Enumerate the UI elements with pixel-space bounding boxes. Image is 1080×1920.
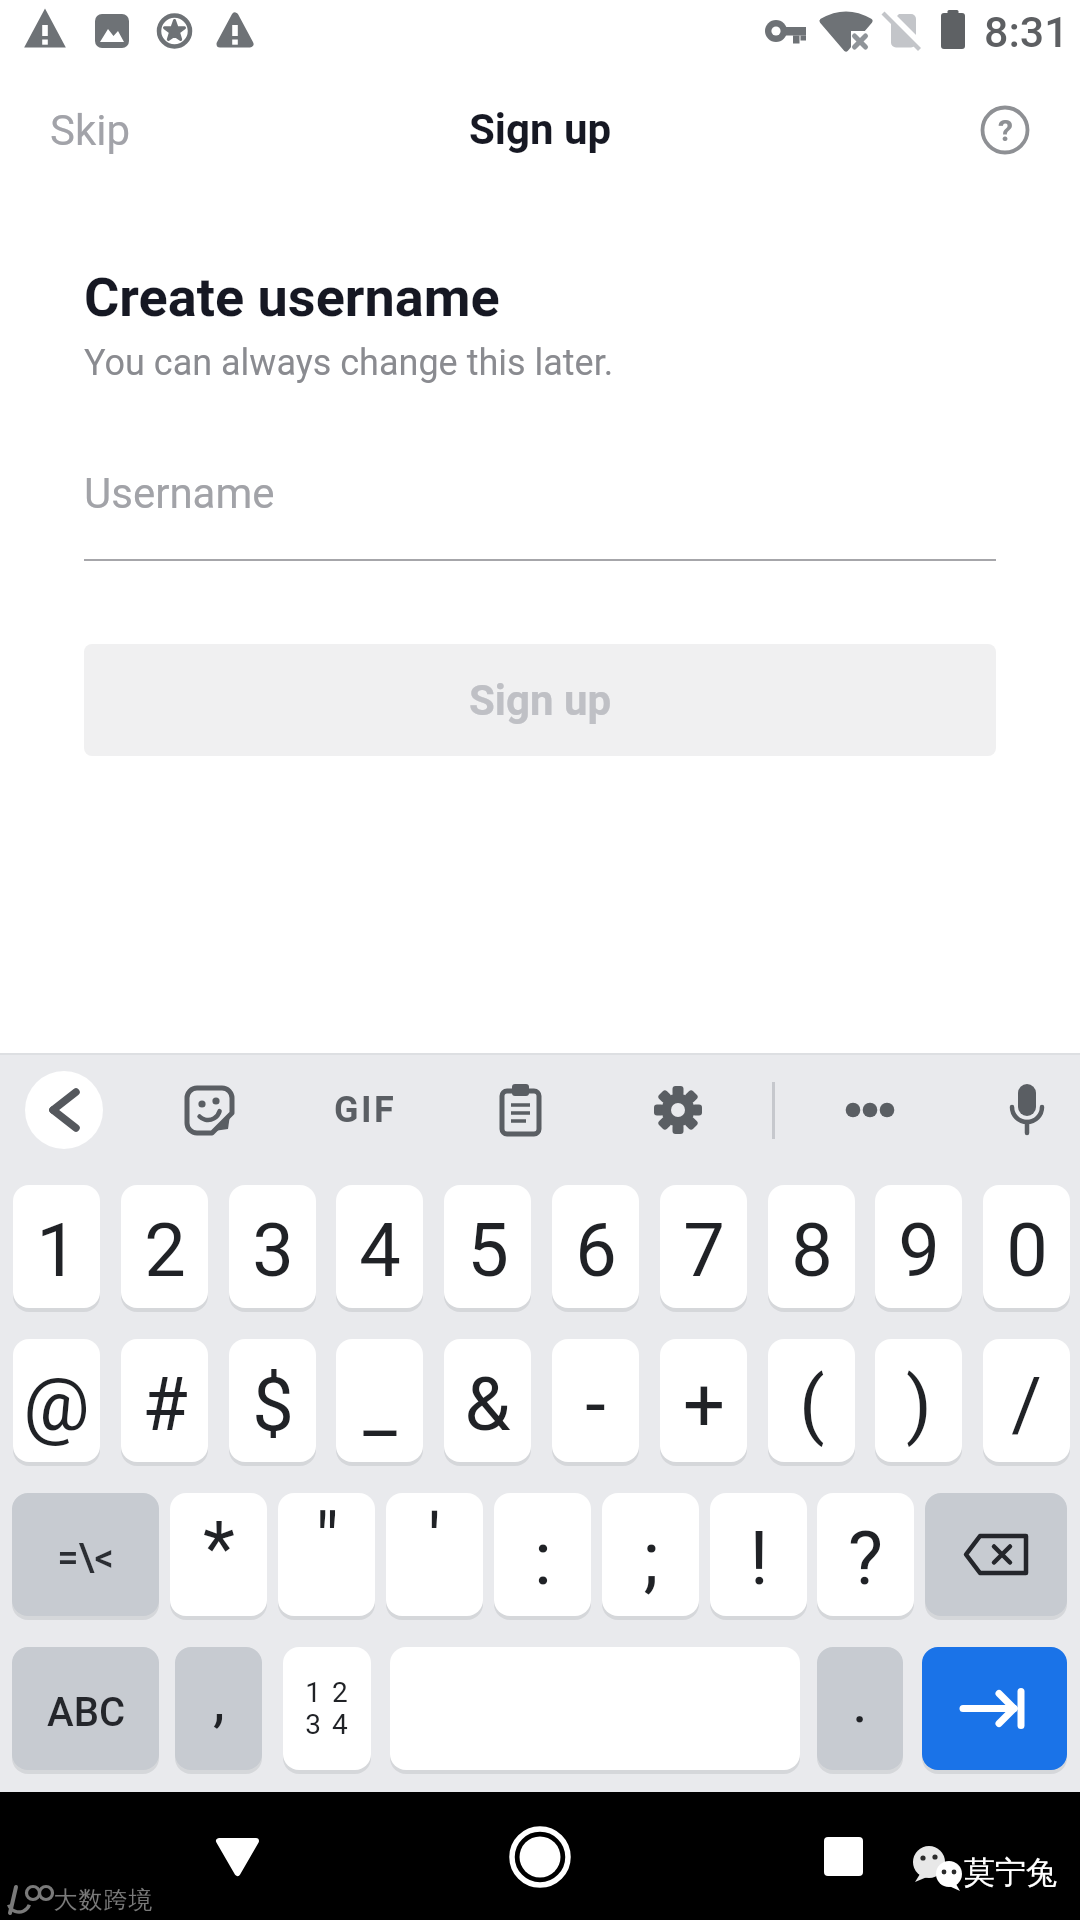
button[interactable]: (: [768, 1339, 855, 1462]
staticText: Sign up: [469, 676, 612, 725]
staticText: Username: [84, 469, 275, 518]
staticText: :: [534, 1515, 552, 1602]
staticText: ABC: [47, 1689, 125, 1736]
staticText: ?: [848, 1515, 883, 1602]
button[interactable]: ,: [175, 1647, 262, 1770]
staticText: _: [363, 1361, 397, 1448]
button[interactable]: [840, 1080, 900, 1140]
staticText: 2: [144, 1207, 186, 1294]
button[interactable]: $: [229, 1339, 316, 1462]
button[interactable]: 0: [983, 1185, 1070, 1308]
button[interactable]: ;: [602, 1493, 699, 1616]
staticText: Skip: [50, 106, 131, 155]
button[interactable]: ?: [817, 1493, 914, 1616]
staticText: 8: [791, 1207, 833, 1294]
button[interactable]: ABC: [12, 1647, 159, 1770]
button[interactable]: .: [817, 1647, 903, 1770]
staticText: GIF: [334, 1089, 397, 1131]
staticText: Create username: [84, 266, 500, 329]
button[interactable]: [180, 1810, 294, 1904]
button[interactable]: !: [710, 1493, 807, 1616]
staticText: 3: [252, 1207, 294, 1294]
staticText: =\<: [57, 1536, 114, 1581]
button[interactable]: #: [121, 1339, 208, 1462]
button[interactable]: Skip: [30, 95, 150, 165]
staticText: 7: [683, 1207, 725, 1294]
button[interactable]: -: [552, 1339, 639, 1462]
button[interactable]: 5: [444, 1185, 531, 1308]
button[interactable]: 3: [229, 1185, 316, 1308]
button[interactable]: [483, 1810, 597, 1904]
staticText: +: [683, 1361, 725, 1448]
staticText: $: [252, 1361, 294, 1448]
button[interactable]: Sign up: [84, 644, 996, 756]
button[interactable]: [492, 1080, 548, 1140]
staticText: 5: [467, 1207, 509, 1294]
button[interactable]: &: [444, 1339, 531, 1462]
staticText: 大数跨境: [53, 1885, 153, 1915]
staticText: #: [142, 1361, 188, 1448]
staticText: ": [315, 1497, 339, 1584]
button[interactable]: 1 2 3 4: [283, 1647, 371, 1770]
staticText: 6: [575, 1207, 617, 1294]
staticText: 4: [359, 1207, 401, 1294]
button[interactable]: [922, 1647, 1067, 1770]
button[interactable]: 2: [121, 1185, 208, 1308]
staticText: .: [852, 1666, 868, 1736]
button[interactable]: *: [170, 1493, 267, 1616]
button[interactable]: +: [660, 1339, 747, 1462]
staticText: ': [428, 1497, 441, 1584]
staticText: ): [906, 1361, 932, 1448]
button[interactable]: 7: [660, 1185, 747, 1308]
button[interactable]: [925, 1493, 1067, 1616]
button[interactable]: ': [386, 1493, 483, 1616]
button[interactable]: _: [336, 1339, 423, 1462]
button[interactable]: 9: [875, 1185, 962, 1308]
button[interactable]: 8: [768, 1185, 855, 1308]
button[interactable]: /: [983, 1339, 1070, 1462]
staticText: 0: [1006, 1207, 1048, 1294]
staticText: !: [749, 1515, 769, 1602]
button[interactable]: :: [494, 1493, 591, 1616]
staticText: 1: [36, 1207, 78, 1294]
button[interactable]: =\<: [12, 1493, 159, 1616]
staticText: ,: [213, 1664, 225, 1734]
staticText: 8:31: [984, 7, 1069, 57]
button[interactable]: [976, 101, 1034, 159]
button[interactable]: [178, 1080, 238, 1140]
staticText: @: [23, 1361, 90, 1448]
button[interactable]: [997, 1080, 1057, 1140]
staticText: /: [1011, 1361, 1042, 1448]
button[interactable]: [788, 1810, 902, 1904]
button[interactable]: [648, 1080, 708, 1140]
staticText: &: [464, 1361, 511, 1448]
staticText: -: [585, 1361, 606, 1448]
button[interactable]: 1: [13, 1185, 100, 1308]
staticText: *: [203, 1505, 235, 1592]
staticText: 9: [898, 1207, 940, 1294]
button[interactable]: [330, 1080, 400, 1140]
button[interactable]: [25, 1071, 103, 1149]
button[interactable]: ): [875, 1339, 962, 1462]
staticText: Sign up: [469, 105, 612, 154]
staticText: 莫宁兔: [964, 1853, 1057, 1892]
staticText: 1 2 3 4: [305, 1676, 350, 1741]
staticText: (: [799, 1361, 825, 1448]
staticText: You can always change this later.: [84, 342, 614, 384]
staticText: ?: [998, 113, 1013, 148]
button[interactable]: ": [278, 1493, 375, 1616]
button[interactable]: 4: [336, 1185, 423, 1308]
button[interactable]: @: [13, 1339, 100, 1462]
staticText: ;: [643, 1515, 659, 1602]
button[interactable]: 6: [552, 1185, 639, 1308]
